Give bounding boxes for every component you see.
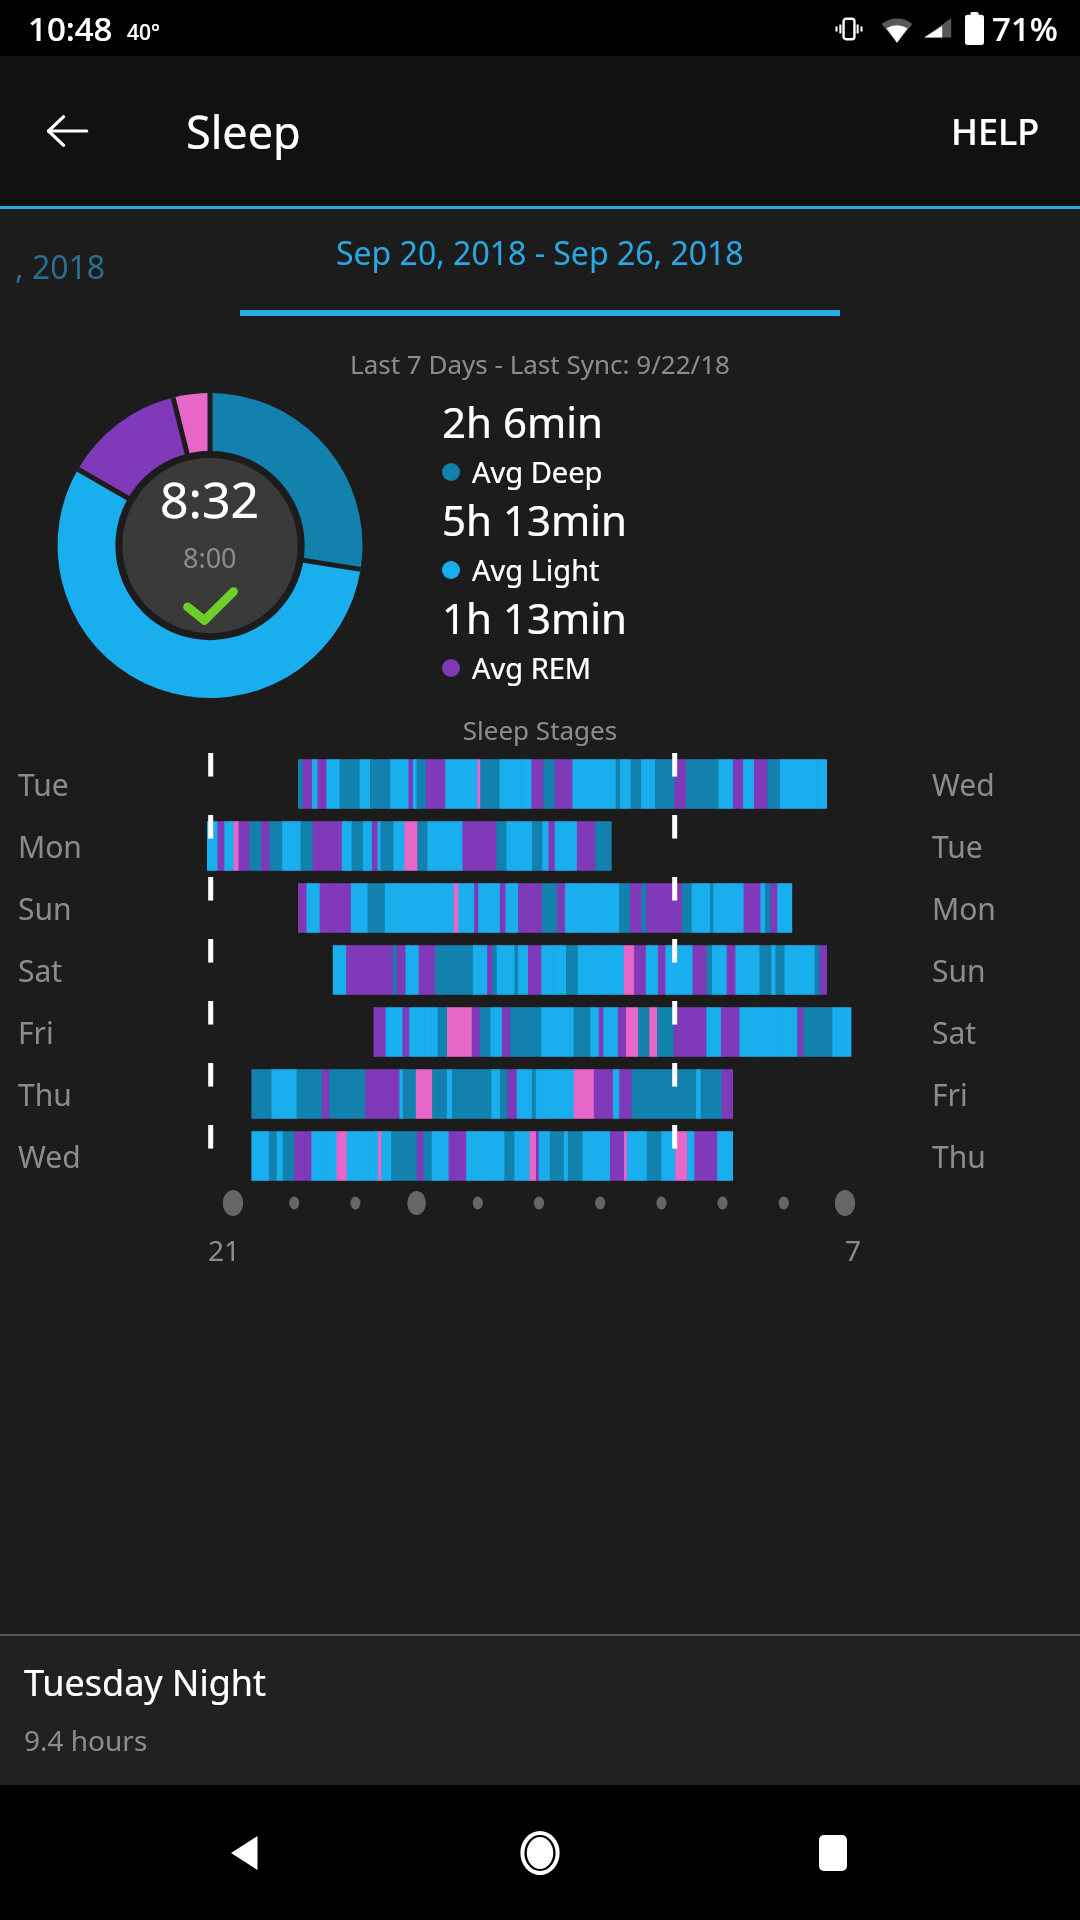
staticText: Mon: [18, 826, 82, 867]
staticText: 40°: [127, 18, 160, 47]
staticText: Sat: [932, 1012, 977, 1053]
staticText: 5h 13min: [442, 491, 628, 548]
staticText: Tue: [932, 826, 983, 867]
staticText: Wed: [932, 764, 995, 805]
staticText: Sep 20, 2018 - Sep 26, 2018: [336, 231, 744, 275]
staticText: Sleep: [186, 101, 301, 162]
staticText: 2h 6min: [442, 393, 603, 450]
staticText: HELP: [951, 107, 1040, 156]
staticText: Sun: [18, 888, 72, 929]
staticText: Sat: [18, 950, 63, 991]
staticText: 1h 13min: [442, 589, 628, 646]
staticText: Avg REM: [472, 648, 592, 687]
staticText: Sleep Stages: [0, 712, 1080, 747]
staticText: 8:00: [183, 539, 237, 576]
staticText: 8:32: [160, 465, 260, 533]
button[interactable]: Recents: [788, 1808, 878, 1898]
staticText: , 2018: [15, 245, 106, 289]
staticText: Sun: [932, 950, 986, 991]
button[interactable]: , 2018: [0, 209, 240, 324]
staticText: 21: [208, 1231, 241, 1269]
button[interactable]: Tuesday Night: [0, 1636, 1080, 1785]
staticText: Last 7 Days - Last Sync: 9/22/18: [0, 346, 1080, 381]
staticText: Thu: [18, 1074, 72, 1115]
staticText: Mon: [932, 888, 996, 929]
staticText: Tue: [18, 764, 69, 805]
staticText: Fri: [18, 1012, 54, 1053]
staticText: Avg Light: [472, 550, 600, 589]
button[interactable]: Back: [28, 92, 106, 170]
staticText: Tuesday Night: [24, 1658, 267, 1707]
button[interactable]: Sep 20, 2018 - Sep 26, 2018: [240, 209, 840, 324]
staticText: Fri: [932, 1074, 968, 1115]
button[interactable]: Home: [495, 1808, 585, 1898]
button[interactable]: Back: [203, 1808, 293, 1898]
staticText: 7: [845, 1231, 862, 1269]
staticText: Avg Deep: [472, 452, 603, 491]
staticText: 71%: [992, 6, 1058, 51]
staticText: 9.4 hours: [24, 1721, 148, 1759]
staticText: 10:48: [28, 6, 113, 51]
staticText: Thu: [932, 1136, 986, 1177]
staticText: Wed: [18, 1136, 81, 1177]
button[interactable]: HELP: [925, 91, 1066, 172]
